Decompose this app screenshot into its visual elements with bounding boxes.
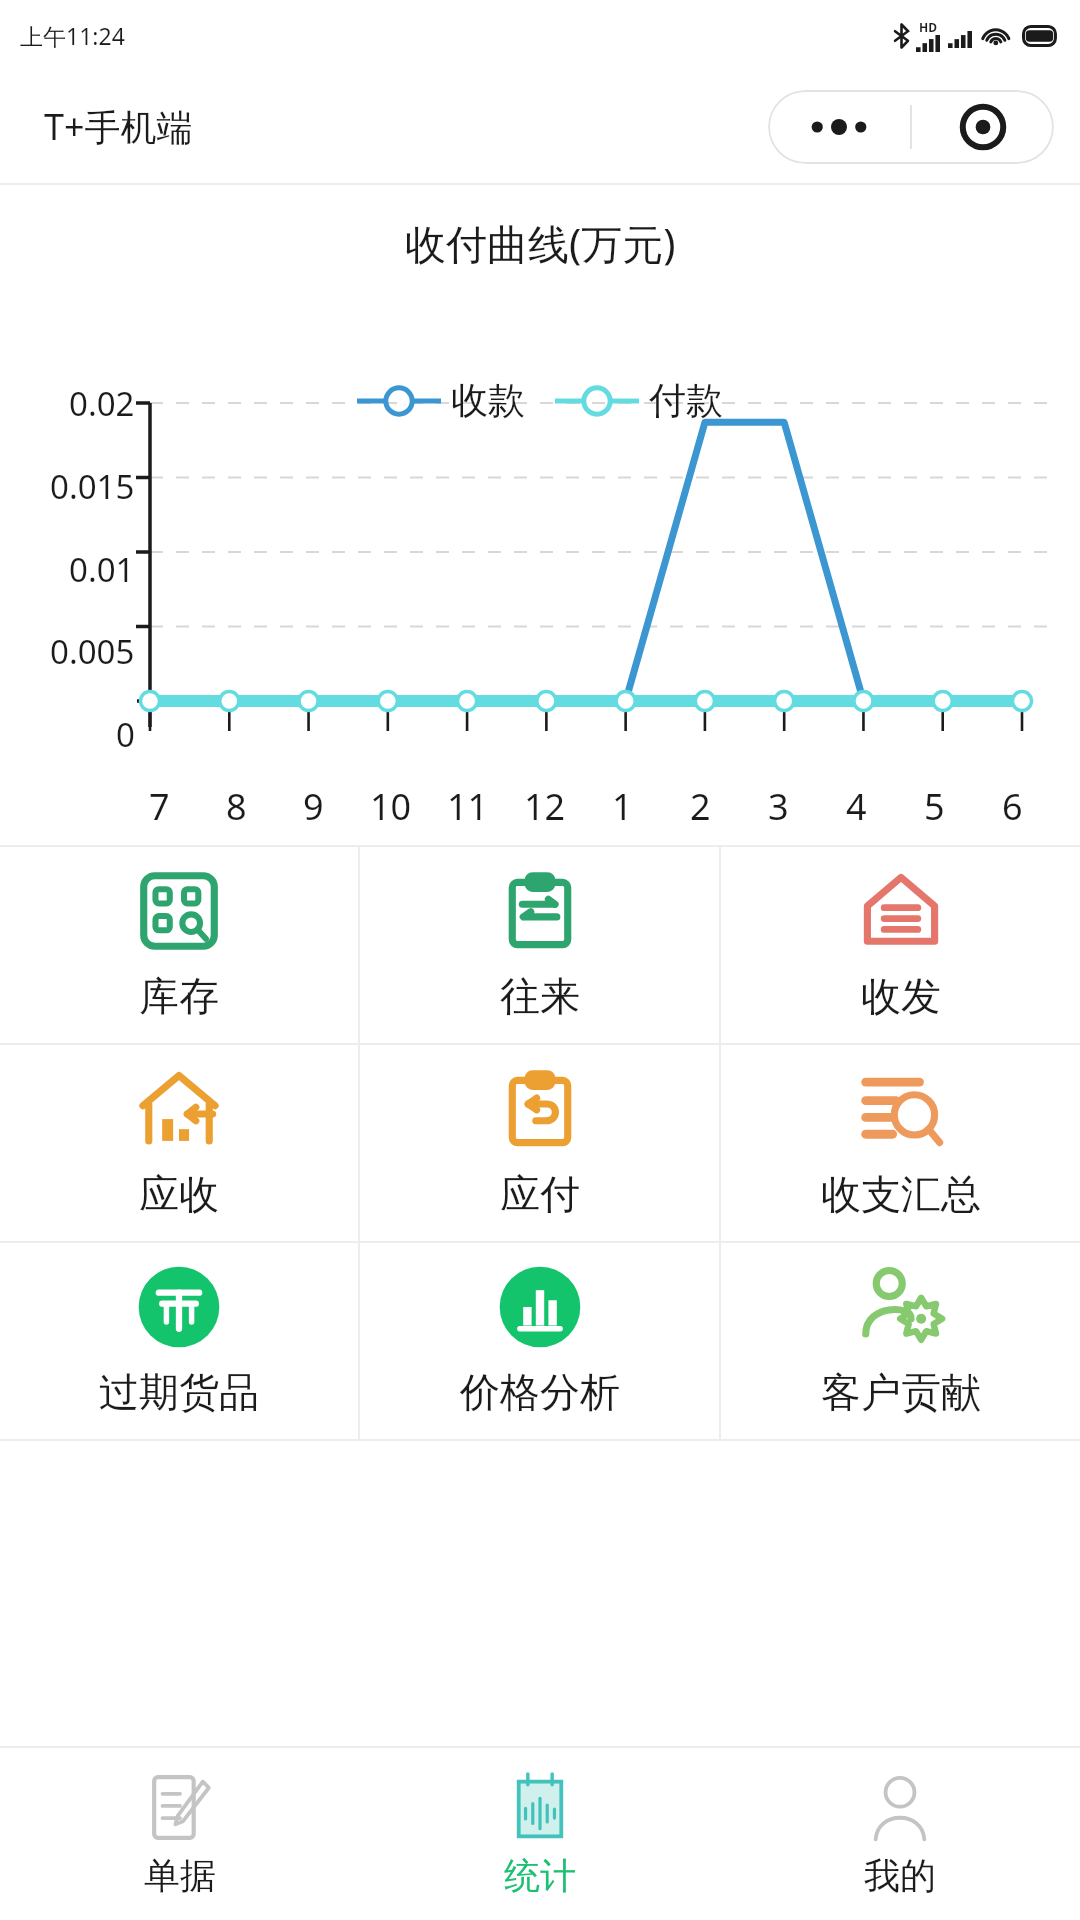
staticText: 11 xyxy=(447,782,489,831)
staticText: 7 xyxy=(149,782,170,831)
staticText: 0 xyxy=(116,712,135,757)
staticText: 上午11:24 xyxy=(20,20,125,51)
staticText: 0.005 xyxy=(50,629,135,674)
staticText: 2 xyxy=(690,782,711,831)
staticText: 收款 xyxy=(451,377,525,424)
button[interactable]: T+手机端 xyxy=(44,102,193,151)
staticText: 应收 xyxy=(139,1169,219,1219)
button[interactable]: Close xyxy=(912,90,1054,164)
button[interactable]: 过期货品 xyxy=(0,1243,358,1439)
staticText: 6 xyxy=(1002,782,1023,831)
staticText: 付款 xyxy=(649,377,723,424)
button[interactable]: 应付 xyxy=(360,1045,719,1241)
staticText: 0.01 xyxy=(69,547,135,592)
button[interactable]: 库存 xyxy=(0,847,358,1043)
button[interactable]: 统计 xyxy=(360,1748,720,1920)
staticText: 过期货品 xyxy=(99,1367,259,1417)
staticText: 5 xyxy=(924,782,945,831)
staticText: 应付 xyxy=(500,1169,580,1219)
staticText: 0.02 xyxy=(69,381,135,426)
staticText: 我的 xyxy=(864,1853,936,1898)
button[interactable]: 我的 xyxy=(720,1748,1080,1920)
staticText: 价格分析 xyxy=(460,1367,620,1417)
button[interactable]: 往来 xyxy=(360,847,719,1043)
button[interactable]: 客户贡献 xyxy=(721,1243,1080,1439)
staticText: 收付曲线(万元) xyxy=(405,215,676,271)
staticText: 0.015 xyxy=(50,464,135,509)
button[interactable]: 应收 xyxy=(0,1045,358,1241)
staticText: 往来 xyxy=(500,971,580,1021)
staticText: 10 xyxy=(370,782,412,831)
button[interactable]: 价格分析 xyxy=(360,1243,719,1439)
button[interactable]: 单据 xyxy=(0,1748,360,1920)
button[interactable]: 收发 xyxy=(721,847,1080,1043)
staticText: 12 xyxy=(524,782,566,831)
button[interactable]: 收支汇总 xyxy=(721,1045,1080,1241)
staticText: 8 xyxy=(226,782,247,831)
staticText: HD xyxy=(919,19,937,35)
staticText: 收支汇总 xyxy=(821,1169,981,1219)
staticText: 4 xyxy=(846,782,867,831)
staticText: 统计 xyxy=(504,1853,576,1898)
staticText: 库存 xyxy=(139,971,219,1021)
staticText: 收发 xyxy=(861,971,941,1021)
staticText: 9 xyxy=(303,782,324,831)
staticText: 客户贡献 xyxy=(821,1367,981,1417)
staticText: 3 xyxy=(768,782,789,831)
staticText: 1 xyxy=(612,782,633,831)
staticText: 单据 xyxy=(144,1853,216,1898)
button[interactable]: More options xyxy=(768,90,910,164)
